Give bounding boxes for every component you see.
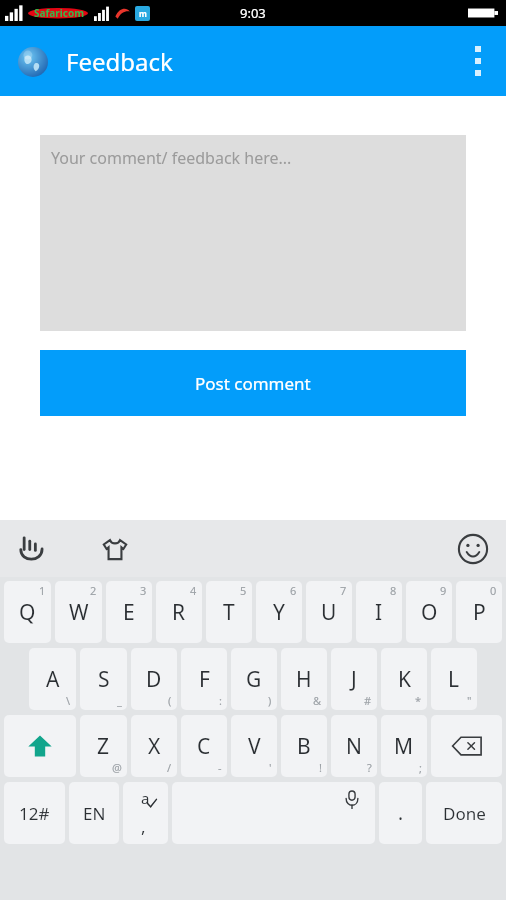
staticText: Your comment/ feedback here... <box>51 147 292 169</box>
button[interactable]: Input options <box>123 782 168 844</box>
button[interactable]: P <box>456 581 502 643</box>
staticText: _ <box>117 693 122 708</box>
staticText: 4 <box>190 583 197 598</box>
staticText: Post comment <box>195 372 311 395</box>
staticText: ! <box>319 760 322 775</box>
button[interactable]: Handwriting input <box>10 527 54 571</box>
staticText: Done <box>443 802 486 825</box>
button[interactable]: G <box>231 648 277 710</box>
button[interactable]: More options <box>450 26 506 96</box>
button[interactable]: V <box>231 715 277 777</box>
staticText: ) <box>268 693 272 708</box>
staticText: O <box>421 598 438 627</box>
button[interactable]: L <box>431 648 477 710</box>
staticText: J <box>351 665 357 694</box>
button[interactable]: Shift <box>4 715 76 777</box>
staticText: 3 <box>140 583 147 598</box>
button[interactable]: Your comment/ feedback here... <box>40 135 466 331</box>
staticText: a <box>141 788 150 808</box>
button[interactable]: I <box>356 581 402 643</box>
button[interactable]: 12# <box>4 782 65 844</box>
staticText: K <box>398 665 411 694</box>
staticText: B <box>297 732 311 761</box>
staticText: ? <box>367 760 372 775</box>
staticText: 5 <box>240 583 247 598</box>
staticText: V <box>248 732 261 761</box>
staticText: H <box>296 665 312 694</box>
staticText: N <box>346 732 362 761</box>
staticText: 7 <box>340 583 347 598</box>
staticText: W <box>69 598 89 627</box>
staticText: E <box>123 598 135 627</box>
button[interactable]: S <box>80 648 127 710</box>
staticText: 9 <box>440 583 447 598</box>
button[interactable]: K <box>381 648 427 710</box>
button[interactable]: Emoji <box>452 528 494 570</box>
button[interactable]: M <box>381 715 427 777</box>
button[interactable]: B <box>281 715 327 777</box>
staticText: @ <box>112 760 122 775</box>
staticText: G <box>246 665 262 694</box>
staticText: L <box>448 665 460 694</box>
button[interactable]: X <box>131 715 177 777</box>
staticText: ( <box>168 693 172 708</box>
staticText: U <box>321 598 337 627</box>
staticText: M <box>394 732 414 761</box>
button[interactable]: Done <box>426 782 502 844</box>
button[interactable]: U <box>306 581 352 643</box>
button[interactable]: W <box>55 581 102 643</box>
staticText: A <box>46 665 60 694</box>
staticText: ' <box>269 760 272 775</box>
button[interactable]: F <box>181 648 227 710</box>
button[interactable]: C <box>181 715 227 777</box>
staticText: 0 <box>490 583 497 598</box>
staticText: 8 <box>390 583 397 598</box>
staticText: 12# <box>19 802 50 825</box>
button[interactable]: Space <box>172 782 375 844</box>
staticText: D <box>146 665 162 694</box>
staticText: EN <box>83 802 106 825</box>
staticText: # <box>364 693 372 708</box>
staticText: \ <box>66 693 71 708</box>
button[interactable]: R <box>156 581 202 643</box>
button[interactable]: Y <box>256 581 302 643</box>
staticText: Z <box>97 732 110 761</box>
staticText: Y <box>273 598 285 627</box>
staticText: X <box>148 732 161 761</box>
staticText: C <box>197 732 211 761</box>
button[interactable]: D <box>131 648 177 710</box>
staticText: m <box>139 8 147 19</box>
staticText: / <box>167 760 172 775</box>
button[interactable]: Post comment <box>40 350 466 416</box>
button[interactable]: A <box>29 648 76 710</box>
button[interactable]: E <box>106 581 152 643</box>
staticText: : <box>219 693 222 708</box>
button[interactable]: Backspace <box>431 715 502 777</box>
staticText: 6 <box>290 583 297 598</box>
staticText: , <box>141 815 146 838</box>
button[interactable]: T <box>206 581 252 643</box>
staticText: 1 <box>39 583 46 598</box>
staticText: - <box>218 760 222 775</box>
button[interactable]: . <box>379 782 422 844</box>
staticText: Q <box>19 598 36 627</box>
staticText: & <box>313 693 322 708</box>
staticText: " <box>467 693 472 708</box>
button[interactable]: N <box>331 715 377 777</box>
staticText: T <box>223 598 235 627</box>
staticText: Feedback <box>66 45 173 78</box>
staticText: * <box>415 693 422 708</box>
staticText: Safaricom <box>34 6 84 20</box>
staticText: S <box>98 665 110 694</box>
staticText: 9:03 <box>240 4 266 22</box>
button[interactable]: Z <box>80 715 127 777</box>
button[interactable]: Keyboard theme <box>92 526 138 572</box>
button[interactable]: O <box>406 581 452 643</box>
button[interactable]: H <box>281 648 327 710</box>
button[interactable]: EN <box>69 782 119 844</box>
staticText: I <box>375 598 383 627</box>
staticText: . <box>398 800 404 826</box>
button[interactable]: Q <box>4 581 51 643</box>
button[interactable]: J <box>331 648 377 710</box>
staticText: 2 <box>90 583 97 598</box>
